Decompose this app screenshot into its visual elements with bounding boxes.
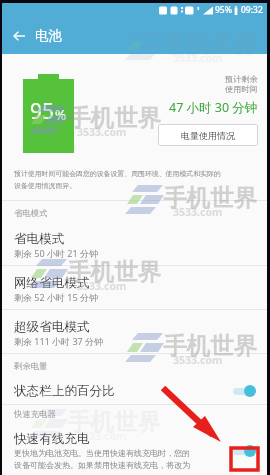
staticText: 3533.com [77, 279, 127, 293]
staticText: 手机世界 [163, 331, 257, 361]
button[interactable]: 状态栏上的百分比 [2, 375, 267, 404]
staticText: 省电模式 [14, 231, 65, 247]
staticText: 3533.com [173, 51, 223, 65]
staticText: 更快地为电池充电。当使用快速有线充电时，您的 设备可能会发热。如果禁用快速有线充… [14, 448, 190, 471]
button[interactable]: 超级省电模式 [2, 310, 267, 354]
staticText: 手机世界 [67, 103, 161, 133]
button[interactable]: 快速有线充电 [2, 423, 267, 471]
staticText: 09:32 [241, 4, 263, 16]
button[interactable]: 电量使用情况 [158, 124, 258, 146]
staticText: % [55, 106, 67, 124]
button[interactable]: 开关 [233, 385, 256, 397]
staticText: 电量使用情况 [181, 130, 235, 141]
staticText: 剩余 111 小时 37 分钟 [14, 335, 104, 347]
button[interactable]: 开关 [233, 445, 256, 457]
staticText: 省电模式 [14, 208, 48, 219]
staticText: 3533.com [173, 205, 223, 219]
staticText: 快速有线充电 [14, 431, 90, 447]
staticText: 电池 [35, 27, 62, 44]
staticText: 超级省电模式 [14, 319, 90, 335]
staticText: 手机世界 [67, 257, 161, 287]
staticText: 3533.com [173, 353, 223, 367]
staticText: 手机世界 [67, 407, 161, 437]
staticText: 预计使用时间可能会因您的设备设置、周围环境、使用模式和实际的 设备使用情况而异。 [14, 169, 221, 190]
staticText: 剩余 50 小时 21 分钟 [14, 247, 98, 259]
button[interactable]: 返回 [2, 17, 35, 54]
button[interactable]: 省电模式 [2, 222, 267, 266]
staticText: 3533.com [77, 429, 127, 443]
staticText: 预计剩余 [225, 74, 258, 84]
staticText: 手机世界 [163, 29, 257, 59]
staticText: 剩余 52 小时 15 分钟 [14, 291, 98, 303]
staticText: 47 小时 30 分钟 [169, 99, 258, 116]
staticText: 使用时间 [225, 84, 258, 94]
staticText: 状态栏上的百分比 [14, 383, 115, 399]
staticText: 3533.com [77, 125, 127, 139]
button[interactable]: 网络省电模式 [2, 266, 267, 310]
staticText: 95 [30, 97, 55, 126]
staticText: 剩余电量 [14, 361, 48, 372]
staticText: 快速充电器 [14, 409, 56, 420]
staticText: 网络省电模式 [14, 275, 90, 291]
staticText: 95% [215, 4, 232, 16]
staticText: 手机世界 [163, 183, 257, 213]
